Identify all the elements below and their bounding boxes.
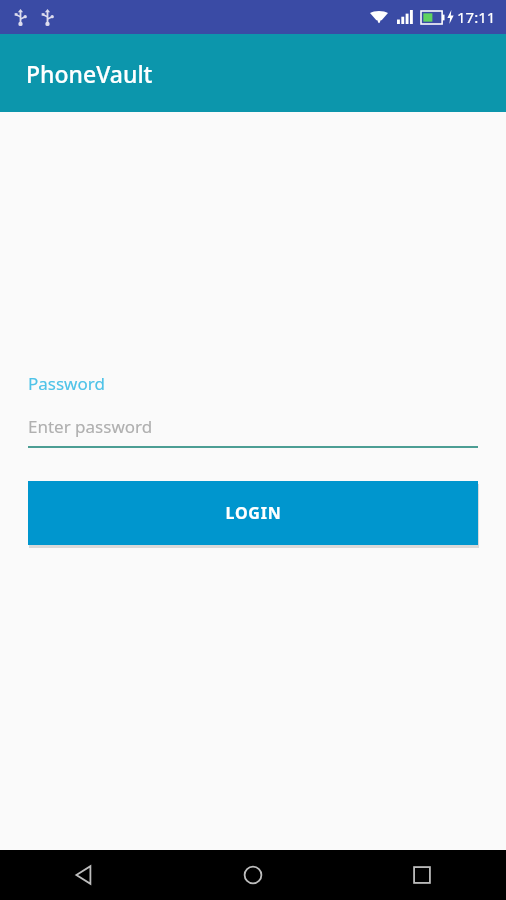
staticText: LOGIN <box>225 502 282 524</box>
button[interactable]: Home <box>168 850 337 900</box>
button[interactable]: Back <box>0 850 168 900</box>
staticText: Password <box>28 372 105 395</box>
button[interactable]: Enter password <box>28 413 478 448</box>
button[interactable]: Recent apps <box>337 850 506 900</box>
staticText: 17:11 <box>457 7 496 27</box>
staticText: PhoneVault <box>26 58 153 89</box>
staticText: Enter password <box>28 415 153 438</box>
button[interactable]: LOGIN <box>28 481 478 545</box>
